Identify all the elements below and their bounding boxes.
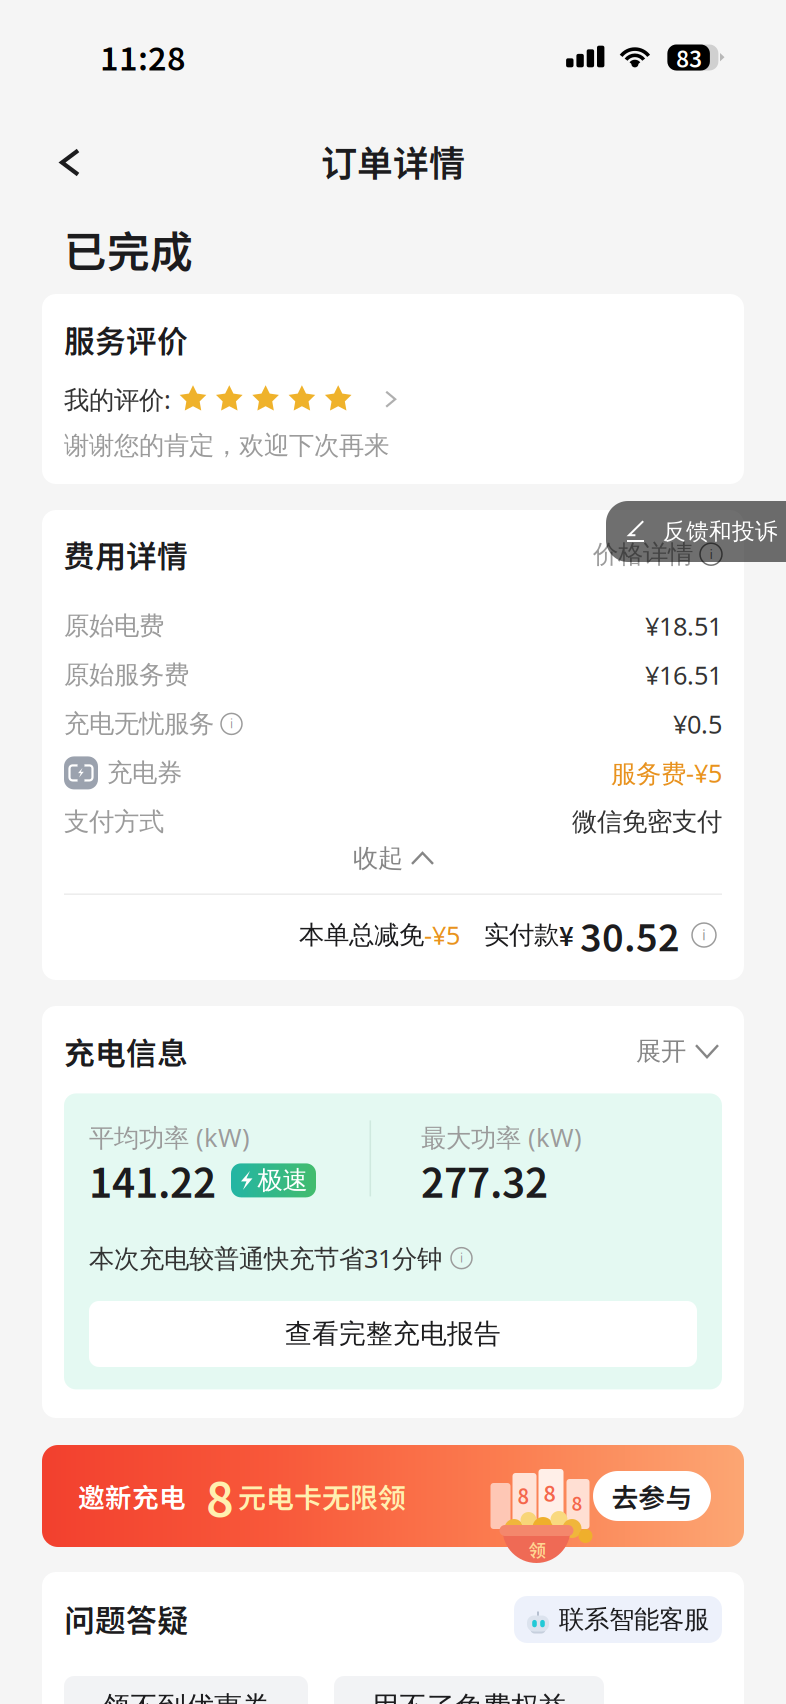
staticText: 问题答疑 [64,1596,188,1641]
staticText: 8 [517,1481,529,1510]
staticText: 邀新充电 [78,1477,186,1515]
staticText: 最大功率 (kW) [421,1120,582,1154]
staticText: 领 [528,1537,545,1562]
staticText: 本单总减免 [299,919,424,951]
staticText: i [702,925,706,944]
button[interactable]: 用不了免费权益 [334,1676,604,1704]
staticText: i [460,1250,463,1266]
staticText: 平均功率 (kW) [89,1120,250,1154]
staticText: 141.22 [89,1151,216,1209]
staticText: 充电信息 [64,1029,188,1073]
staticText: 已完成 [64,218,193,280]
button[interactable]: Back [39,128,101,193]
staticText: 8 [206,1461,234,1531]
staticText: 极速 [257,1165,307,1196]
button[interactable]: 查看完整充电报告 [89,1301,697,1367]
staticText: 服务费-¥5 [611,756,722,790]
staticText: 充电券 [107,757,182,788]
staticText: 收起 [353,843,403,874]
staticText: 微信免密支付 [572,806,722,837]
staticText: 原始服务费 [64,659,189,690]
staticText: 我的评价: [64,382,171,416]
staticText: 83 [676,41,702,74]
staticText: 展开 [636,1036,686,1067]
staticText: 本次充电较普通快充节省31分钟 [89,1241,442,1275]
button[interactable]: 反馈和投诉 [606,501,786,562]
staticText: 8 [571,1489,582,1516]
button[interactable]: 8 [42,1445,744,1547]
staticText: ¥16.51 [645,658,722,692]
staticText: ¥0.5 [673,707,722,741]
staticText: 费用详情 [64,532,188,576]
staticText: 实付款 [484,919,559,951]
staticText: 价格详情 [593,539,693,570]
staticText: 8 [543,1477,555,1508]
staticText: 原始电费 [64,610,164,641]
button[interactable]: 领不到优惠券 [64,1676,308,1704]
staticText: 充电无忧服务 [64,708,214,739]
staticText: 30.52 [580,908,680,962]
button[interactable]: 联系智能客服 [514,1594,722,1643]
staticText: 支付方式 [64,806,164,837]
staticText: 谢谢您的肯定，欢迎下次再来 [64,430,389,461]
staticText: 用不了免费权益 [371,1690,567,1704]
staticText: 去参与 [611,1477,692,1515]
staticText: i [230,715,233,731]
staticText: 元电卡无限领 [238,1476,406,1516]
button[interactable]: 展开 [636,1036,722,1067]
staticText: -¥5 [424,918,460,952]
staticText: 查看完整充电报告 [285,1318,501,1350]
staticText: 反馈和投诉 [663,518,778,545]
staticText: 277.32 [421,1151,548,1209]
staticText: 联系智能客服 [559,1604,709,1635]
staticText: ¥ [559,917,574,953]
staticText: ¥18.51 [645,609,722,643]
staticText: i [709,545,712,563]
staticText: 11:28 [100,33,186,80]
staticText: 服务评价 [64,317,188,361]
staticText: 订单详情 [321,135,465,187]
staticText: 领不到优惠券 [102,1690,270,1704]
button[interactable]: 收起 [64,846,722,870]
button[interactable]: 我的评价: [64,361,722,416]
